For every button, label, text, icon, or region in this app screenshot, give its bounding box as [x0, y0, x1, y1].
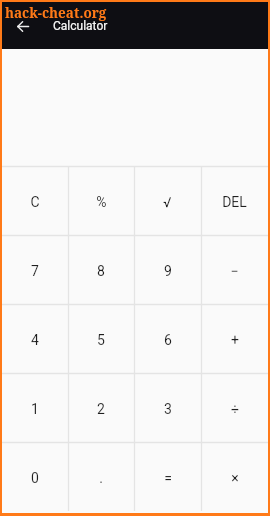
staticText: 0 [31, 470, 39, 486]
button[interactable]: ÷ [201, 373, 268, 442]
staticText: 1 [31, 401, 39, 417]
staticText: 7 [31, 263, 39, 279]
staticText: 5 [97, 332, 105, 348]
button[interactable]: 2 [68, 373, 134, 442]
staticText: ÷ [231, 401, 239, 417]
button[interactable]: 5 [68, 304, 134, 373]
button[interactable]: × [201, 442, 268, 511]
staticText: × [231, 470, 239, 486]
button[interactable]: C [2, 166, 68, 235]
button[interactable]: 0 [2, 442, 68, 511]
staticText: 9 [164, 263, 172, 279]
staticText: % [96, 194, 107, 210]
staticText: hack-cheat.org [5, 4, 107, 22]
staticText: − [230, 263, 239, 279]
staticText: Calculator [53, 19, 108, 33]
staticText: + [231, 332, 239, 348]
button[interactable]: 4 [2, 304, 68, 373]
button[interactable]: DEL [201, 166, 268, 235]
button[interactable]: 6 [134, 304, 201, 373]
staticText: 3 [164, 401, 172, 417]
staticText: 6 [164, 332, 172, 348]
staticText: 8 [97, 263, 105, 279]
staticText: √ [163, 194, 172, 210]
button[interactable]: 8 [68, 235, 134, 304]
staticText: C [30, 194, 40, 210]
button[interactable]: Back [2, 5, 44, 47]
button[interactable]: + [201, 304, 268, 373]
button[interactable]: 9 [134, 235, 201, 304]
staticText: 2 [97, 401, 105, 417]
button[interactable]: 7 [2, 235, 68, 304]
staticText: 4 [31, 332, 39, 348]
button[interactable]: − [201, 235, 268, 304]
button[interactable]: 3 [134, 373, 201, 442]
button[interactable]: = [134, 442, 201, 511]
staticText: = [164, 470, 172, 486]
button[interactable]: % [68, 166, 134, 235]
button[interactable]: 1 [2, 373, 68, 442]
button[interactable]: . [68, 442, 134, 511]
staticText: DEL [222, 194, 247, 210]
button[interactable]: √ [134, 166, 201, 235]
staticText: . [99, 470, 103, 486]
